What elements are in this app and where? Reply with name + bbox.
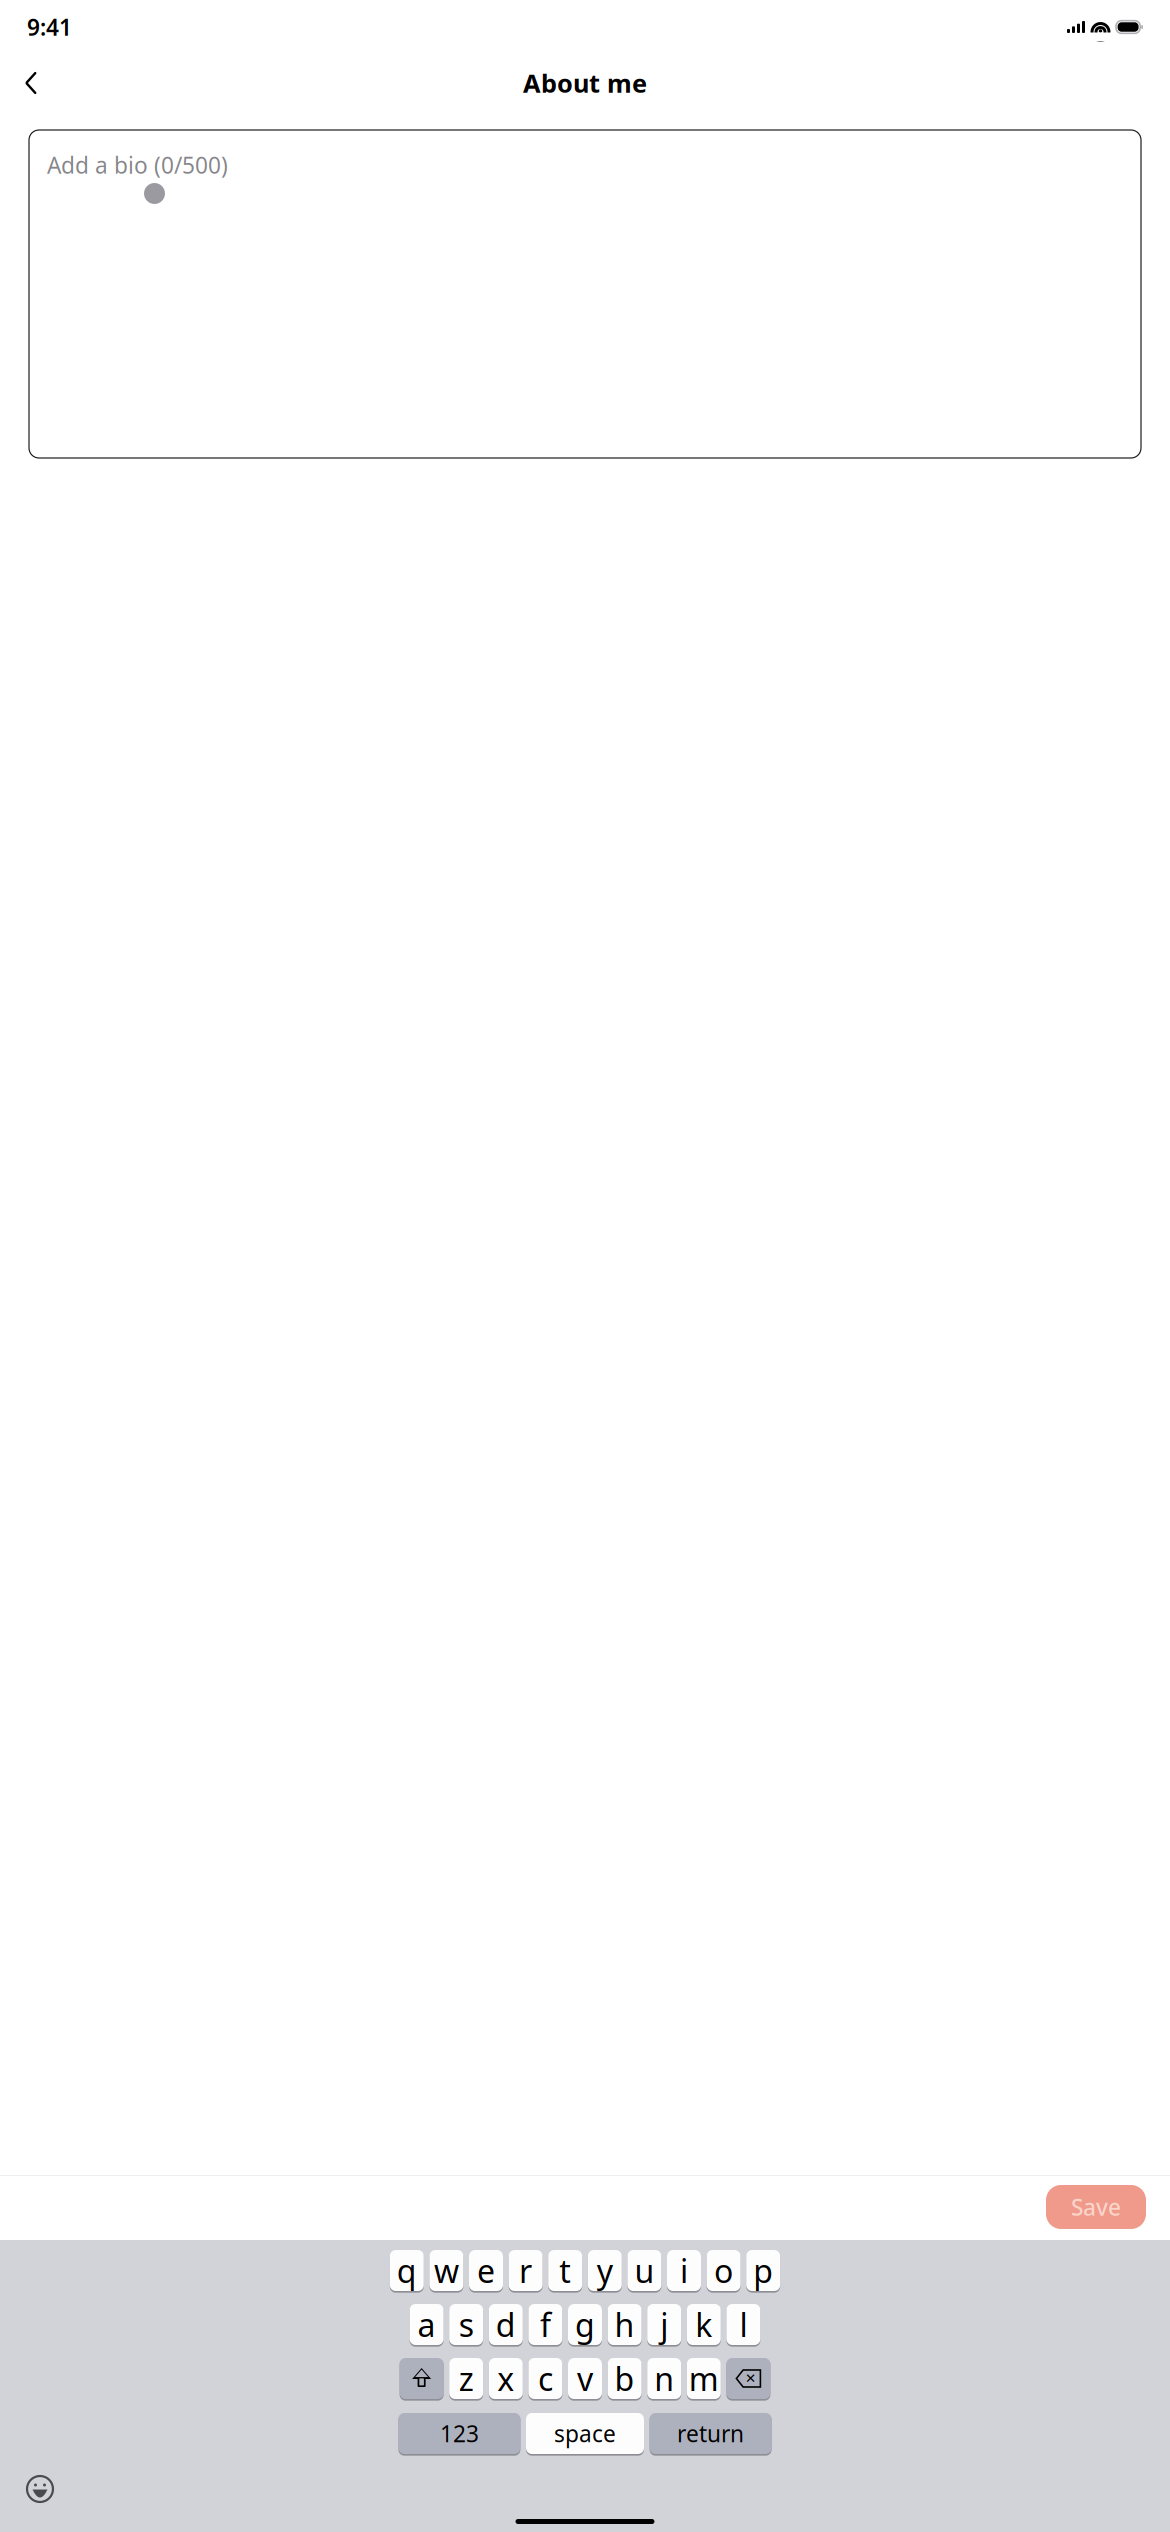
staticText: i xyxy=(680,2249,688,2292)
staticText: 9:41 xyxy=(27,12,72,42)
staticText: o xyxy=(714,2249,733,2292)
staticText: g xyxy=(575,2303,595,2346)
button[interactable]: p xyxy=(746,2249,780,2292)
button[interactable]: Delete xyxy=(726,2357,770,2400)
button[interactable]: d xyxy=(489,2303,523,2346)
staticText: return xyxy=(677,2418,744,2448)
staticText: y xyxy=(597,2249,613,2292)
staticText: l xyxy=(739,2303,747,2346)
button[interactable]: q xyxy=(390,2249,424,2292)
staticText: w xyxy=(434,2249,459,2292)
staticText: k xyxy=(695,2303,712,2346)
staticText: x xyxy=(497,2357,514,2400)
button[interactable]: n xyxy=(647,2357,681,2400)
button[interactable]: Save xyxy=(1046,2185,1146,2229)
staticText: z xyxy=(459,2357,474,2400)
button[interactable]: f xyxy=(528,2303,562,2346)
button[interactable]: Emoji xyxy=(20,2469,60,2509)
staticText: d xyxy=(496,2303,516,2346)
staticText: e xyxy=(477,2249,495,2292)
button[interactable]: c xyxy=(528,2357,562,2400)
staticText: j xyxy=(660,2303,668,2346)
button[interactable]: x xyxy=(489,2357,523,2400)
staticText: ✕ xyxy=(745,2371,756,2386)
button[interactable]: w xyxy=(429,2249,463,2292)
staticText: u xyxy=(634,2249,654,2292)
button[interactable]: 123 xyxy=(398,2412,520,2455)
button[interactable]: space xyxy=(526,2412,644,2455)
staticText: a xyxy=(418,2303,436,2346)
staticText: About me xyxy=(523,66,647,100)
staticText: s xyxy=(459,2303,474,2346)
button[interactable]: i xyxy=(667,2249,701,2292)
button[interactable]: k xyxy=(687,2303,721,2346)
staticText: n xyxy=(654,2357,674,2400)
staticText: c xyxy=(538,2357,553,2400)
button[interactable]: m xyxy=(687,2357,721,2400)
button[interactable]: b xyxy=(608,2357,642,2400)
button[interactable]: h xyxy=(608,2303,642,2346)
button[interactable]: t xyxy=(548,2249,582,2292)
button[interactable]: l xyxy=(726,2303,760,2346)
staticText: space xyxy=(554,2418,616,2448)
button[interactable]: r xyxy=(509,2249,543,2292)
button[interactable]: Shift xyxy=(400,2357,444,2400)
button[interactable]: j xyxy=(647,2303,681,2346)
staticText: q xyxy=(397,2249,417,2292)
button[interactable]: Back xyxy=(9,61,53,105)
staticText: Save xyxy=(1071,2192,1121,2222)
button[interactable]: a xyxy=(410,2303,444,2346)
button[interactable]: y xyxy=(588,2249,622,2292)
staticText: 123 xyxy=(440,2418,479,2448)
staticText: m xyxy=(689,2357,719,2400)
staticText: f xyxy=(540,2303,551,2346)
button[interactable]: s xyxy=(449,2303,483,2346)
staticText: b xyxy=(615,2357,635,2400)
staticText: Add a bio (0/500) xyxy=(47,150,228,180)
staticText: r xyxy=(519,2249,532,2292)
button[interactable]: g xyxy=(568,2303,602,2346)
staticText: h xyxy=(615,2303,635,2346)
button[interactable]: v xyxy=(568,2357,602,2400)
staticText: p xyxy=(753,2249,773,2292)
button[interactable]: return xyxy=(650,2412,772,2455)
button[interactable]: z xyxy=(449,2357,483,2400)
button[interactable]: o xyxy=(707,2249,741,2292)
button[interactable]: u xyxy=(627,2249,661,2292)
staticText: t xyxy=(559,2249,571,2292)
button[interactable]: e xyxy=(469,2249,503,2292)
staticText: v xyxy=(577,2357,593,2400)
